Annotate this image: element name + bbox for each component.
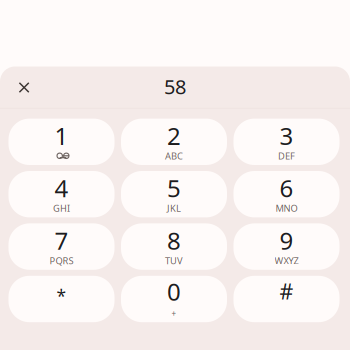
button[interactable]: 5 JKL: [121, 171, 227, 217]
button[interactable]: Close: [4, 67, 44, 107]
staticText: 7: [54, 224, 68, 256]
staticText: JKL: [167, 202, 181, 214]
staticText: *: [56, 284, 66, 307]
button[interactable]: 3 DEF: [233, 119, 339, 165]
staticText: 8: [167, 224, 181, 256]
button[interactable]: pound: [233, 276, 339, 322]
staticText: 4: [54, 172, 68, 204]
staticText: GHI: [53, 202, 70, 214]
staticText: 1: [54, 120, 68, 152]
staticText: 2: [167, 120, 181, 152]
button[interactable]: 8 TUV: [121, 223, 227, 270]
staticText: DEF: [278, 150, 295, 162]
button[interactable]: 0 plus: [121, 276, 227, 322]
staticText: 6: [279, 172, 293, 204]
staticText: 5: [167, 172, 181, 204]
staticText: TUV: [165, 254, 183, 267]
staticText: 3: [279, 120, 293, 152]
staticText: +: [171, 308, 176, 319]
staticText: WXYZ: [274, 254, 298, 267]
button[interactable]: 7 PQRS: [8, 223, 114, 270]
button[interactable]: 4 GHI: [8, 171, 114, 217]
button[interactable]: 6 MNO: [233, 171, 339, 217]
staticText: PQRS: [49, 254, 73, 267]
staticText: 9: [279, 224, 293, 256]
staticText: ABC: [165, 150, 183, 162]
button[interactable]: 2 ABC: [121, 119, 227, 165]
staticText: 0: [167, 276, 181, 307]
staticText: MNO: [275, 202, 297, 214]
button[interactable]: star: [8, 276, 114, 322]
staticText: #: [279, 277, 293, 305]
button[interactable]: 1: [8, 119, 114, 165]
staticText: 58: [164, 73, 186, 100]
button[interactable]: 9 WXYZ: [233, 223, 339, 270]
